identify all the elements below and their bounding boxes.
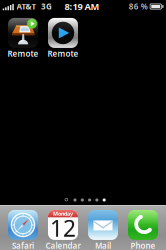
staticText: Calendar (45, 240, 80, 250)
staticText: Mail (95, 240, 111, 250)
staticText: Remote (7, 48, 38, 59)
button[interactable]: Mail (83, 211, 123, 250)
button[interactable]: Monday (43, 211, 83, 250)
staticText: Phone (130, 240, 155, 250)
button[interactable]: Safari (3, 211, 43, 250)
staticText: AT&T (16, 1, 36, 12)
staticText: Remote (47, 48, 78, 59)
button[interactable]: Remote (3, 19, 43, 58)
staticText: 3G (41, 1, 52, 12)
staticText: 86 % (129, 1, 148, 12)
staticText: 8:19 AM (64, 0, 99, 13)
button[interactable]: Phone (123, 211, 163, 250)
staticText: Monday (53, 210, 73, 217)
button[interactable]: Remote (43, 19, 83, 58)
staticText: 12 (50, 213, 76, 243)
staticText: Safari (12, 240, 34, 250)
